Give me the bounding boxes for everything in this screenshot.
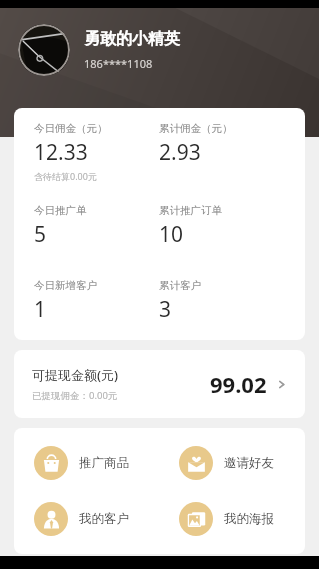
button[interactable]: 累计佣金（元） xyxy=(159,122,285,167)
button[interactable]: 推广商品 xyxy=(14,446,159,480)
staticText: 推广商品 xyxy=(79,455,129,471)
staticText: 1 xyxy=(34,295,47,324)
staticText: 邀请好友 xyxy=(224,455,274,471)
button[interactable]: 我的客户 xyxy=(14,502,159,536)
staticText: 186****1108 xyxy=(84,56,153,71)
staticText: 我的客户 xyxy=(79,511,129,527)
staticText: 2.93 xyxy=(159,138,201,167)
button[interactable]: 累计推广订单 xyxy=(159,204,285,249)
staticText: 今日新增客户 xyxy=(34,279,97,292)
button[interactable]: 今日佣金（元） xyxy=(34,122,159,182)
button[interactable]: 今日新增客户 xyxy=(34,279,159,324)
staticText: 10 xyxy=(159,220,184,249)
button[interactable]: 邀请好友 xyxy=(159,446,305,480)
staticText: 可提现金额(元) xyxy=(32,366,119,384)
staticText: 今日佣金（元） xyxy=(34,122,108,135)
staticText: 今日推广单 xyxy=(34,204,87,217)
staticText: 已提现佣金：0.00元 xyxy=(32,389,118,402)
button[interactable]: Avatar xyxy=(18,24,70,76)
staticText: 5 xyxy=(34,220,47,249)
staticText: 累计推广订单 xyxy=(159,204,222,217)
button[interactable]: 累计客户 xyxy=(159,279,285,324)
staticText: 含待结算0.00元 xyxy=(34,170,97,182)
staticText: 勇敢的小精英 xyxy=(84,29,180,49)
staticText: 3 xyxy=(159,295,172,324)
button[interactable]: 可提现金额(元) xyxy=(14,350,305,418)
staticText: 累计佣金（元） xyxy=(159,122,233,135)
button[interactable]: 今日推广单 xyxy=(34,204,159,249)
staticText: 累计客户 xyxy=(159,279,201,292)
button[interactable]: 我的海报 xyxy=(159,502,305,536)
staticText: 我的海报 xyxy=(224,511,274,527)
staticText: 99.02 xyxy=(210,369,267,399)
staticText: 12.33 xyxy=(34,138,88,167)
